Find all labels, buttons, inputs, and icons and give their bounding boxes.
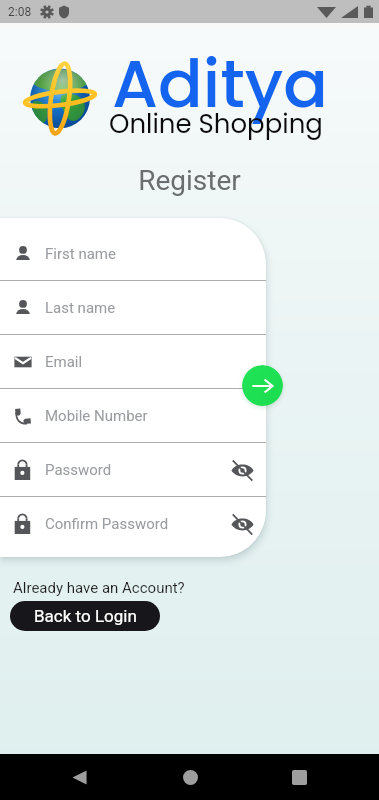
- button[interactable]: Mobile Number: [0, 389, 266, 443]
- button[interactable]: Toggle password visibility: [225, 507, 259, 541]
- button[interactable]: Recent apps: [276, 754, 322, 800]
- staticText: Already have an Account?: [13, 579, 185, 597]
- staticText: Email: [45, 353, 83, 371]
- button[interactable]: Home: [167, 754, 213, 800]
- button[interactable]: Last name: [0, 281, 266, 335]
- button[interactable]: Toggle password visibility: [225, 453, 259, 487]
- button[interactable]: First name: [0, 227, 266, 281]
- staticText: Confirm Password: [45, 515, 169, 533]
- staticText: 2:08: [8, 5, 32, 19]
- staticText: Back to Login: [34, 606, 137, 626]
- button[interactable]: Email: [0, 335, 266, 389]
- button[interactable]: Back: [56, 754, 102, 800]
- staticText: Last name: [45, 299, 116, 317]
- staticText: First name: [45, 245, 116, 263]
- button[interactable]: Back to Login: [10, 601, 160, 631]
- staticText: Aditya: [112, 38, 328, 130]
- staticText: Mobile Number: [45, 407, 148, 425]
- staticText: Register: [0, 164, 379, 197]
- button[interactable]: Confirm Password: [0, 497, 266, 551]
- staticText: Online Shopping: [109, 106, 323, 142]
- button[interactable]: Password: [0, 443, 266, 497]
- button[interactable]: Submit: [242, 365, 283, 406]
- staticText: Password: [45, 461, 112, 479]
